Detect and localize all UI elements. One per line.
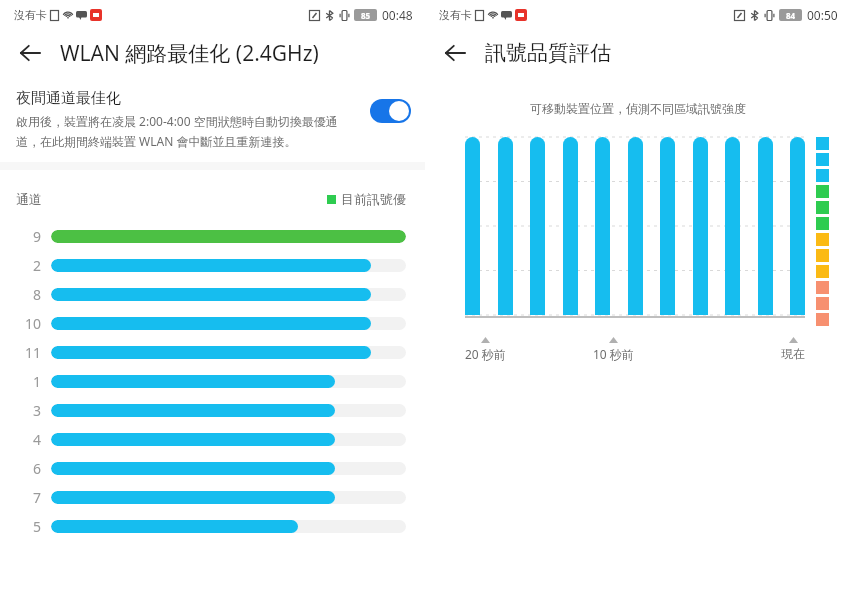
staticText: 10 <box>25 314 42 333</box>
staticText: 2 <box>33 256 42 275</box>
staticText: 沒有卡 <box>14 8 47 22</box>
button[interactable]: 4 <box>0 425 425 454</box>
button[interactable]: 7 <box>0 483 425 512</box>
button[interactable]: 9 <box>0 222 425 251</box>
staticText: 現在 <box>781 346 805 361</box>
staticText: 啟用後，裝置將在凌晨 2:00-4:00 空間狀態時自動切換最優通道，在此期間終… <box>16 113 360 149</box>
button[interactable]: 1 <box>0 367 425 396</box>
staticText: 可移動裝置位置，偵測不同區域訊號強度 <box>530 101 746 116</box>
button[interactable]: 3 <box>0 396 425 425</box>
staticText: 夜間通道最佳化 <box>16 89 121 108</box>
staticText: 1 <box>33 372 42 391</box>
staticText: 00:50 <box>807 7 838 23</box>
staticText: 00:48 <box>382 7 413 23</box>
staticText: 5 <box>33 517 42 536</box>
button[interactable]: Back <box>8 31 52 75</box>
staticText: WLAN 網路最佳化 (2.4GHz) <box>60 39 319 68</box>
button[interactable]: 8 <box>0 280 425 309</box>
staticText: 目前訊號優 <box>341 191 406 207</box>
staticText: 10 秒前 <box>593 346 634 362</box>
staticText: 3 <box>33 401 42 420</box>
staticText: 11 <box>25 343 42 362</box>
button[interactable]: 5 <box>0 512 425 541</box>
staticText: 4 <box>33 430 42 449</box>
staticText: 沒有卡 <box>439 8 472 22</box>
staticText: 20 秒前 <box>465 346 506 362</box>
staticText: 85 <box>361 10 371 21</box>
staticText: 9 <box>33 227 42 246</box>
staticText: 84 <box>786 10 796 21</box>
button[interactable]: 10 <box>0 309 425 338</box>
staticText: 6 <box>33 459 42 478</box>
button[interactable]: 6 <box>0 454 425 483</box>
button[interactable]: 2 <box>0 251 425 280</box>
staticText: 8 <box>33 285 42 304</box>
button[interactable]: 11 <box>0 338 425 367</box>
staticText: 7 <box>33 488 42 507</box>
button[interactable]: Back <box>433 31 477 75</box>
staticText: 訊號品質評估 <box>485 40 611 66</box>
button[interactable]: 夜間通道最佳化 <box>0 89 425 149</box>
staticText: 通道 <box>16 191 42 207</box>
